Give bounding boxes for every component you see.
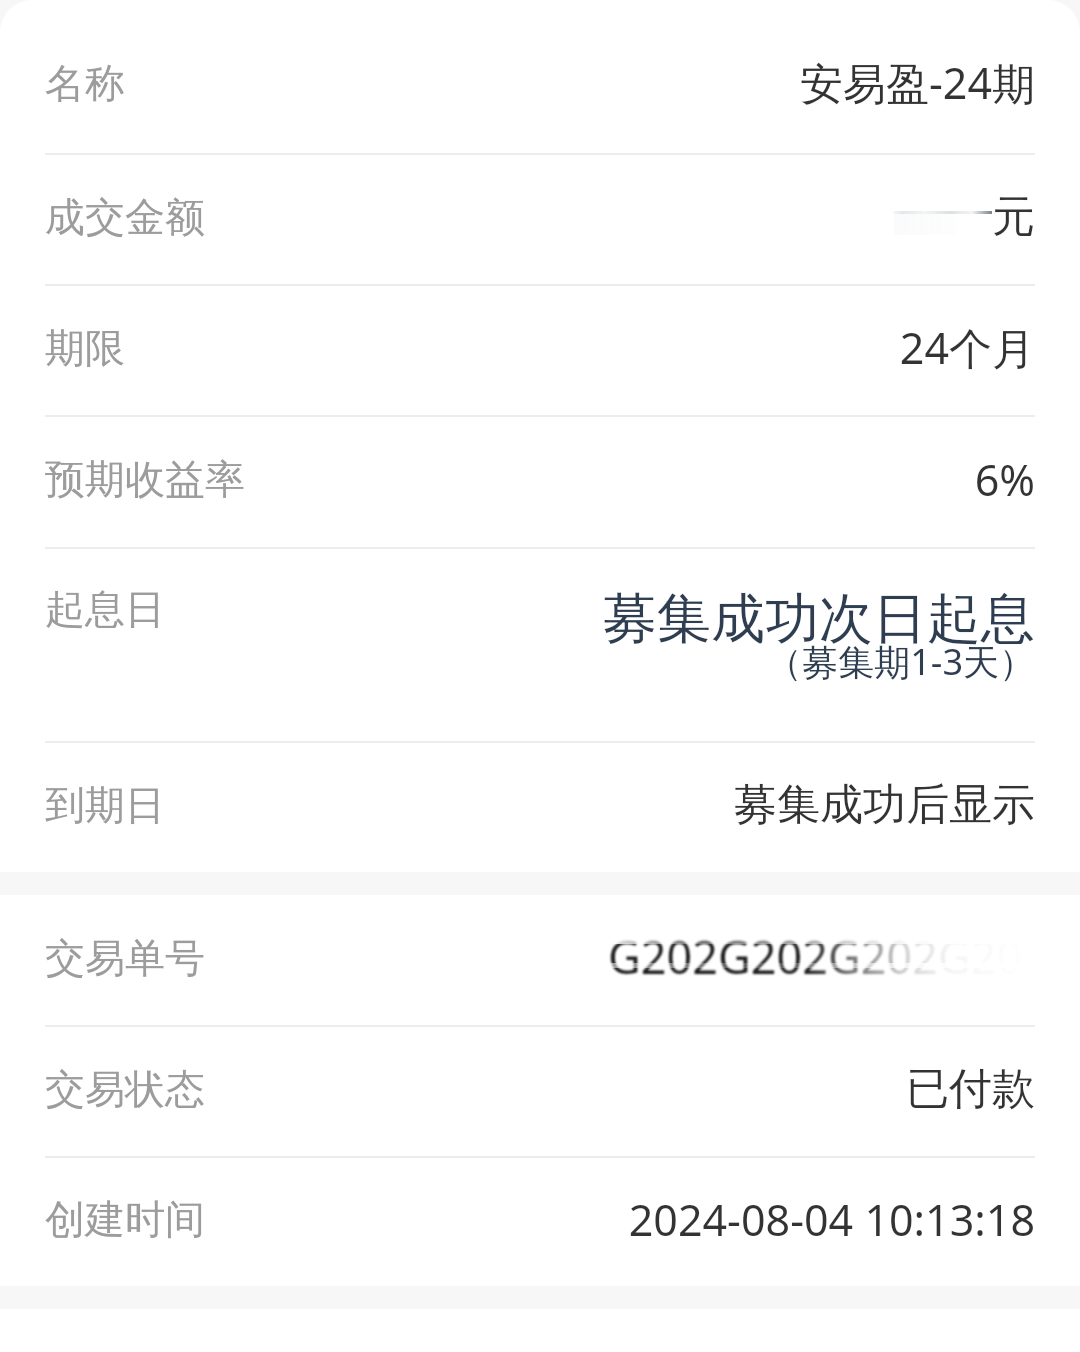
button[interactable]: 名称 [0,0,1080,153]
staticText: 期限 [45,323,125,373]
other: 交易单号已隐藏 [608,924,1035,988]
button[interactable]: 成交金额 [0,153,1080,284]
staticText: 交易单号 [45,933,205,983]
staticText: 元 [992,190,1035,244]
staticText: 交易状态 [45,1064,205,1114]
other: 金额已隐藏 [892,191,992,243]
staticText: （募集期1-3天） [766,637,1035,686]
staticText: 6% [974,450,1035,509]
button[interactable]: 创建时间 [0,1156,1080,1286]
staticText: 2024-08-04 10:13:18 [628,1190,1035,1249]
staticText: 成交金额 [45,192,205,242]
button[interactable]: 预期收益率 [0,415,1080,547]
staticText: 预期收益率 [45,454,245,504]
staticText: 募集成功次日起息 [603,585,1035,653]
button[interactable]: 到期日 [0,741,1080,872]
button[interactable]: 期限 [0,284,1080,415]
staticText: 创建时间 [45,1194,205,1244]
staticText: 到期日 [45,780,165,830]
staticText: 已付款 [906,1062,1035,1116]
staticText: 24个月 [899,318,1035,377]
staticText: G202G202G202G202 [608,926,1028,986]
staticText: 名称 [45,58,125,108]
button[interactable]: 起息日 [0,547,1080,741]
button[interactable]: 交易状态 [0,1025,1080,1156]
staticText: 起息日 [45,584,165,634]
staticText: 募集成功后显示 [734,778,1035,832]
button[interactable]: 交易单号 [0,895,1080,1025]
staticText: 安易盈-24期 [799,53,1035,112]
